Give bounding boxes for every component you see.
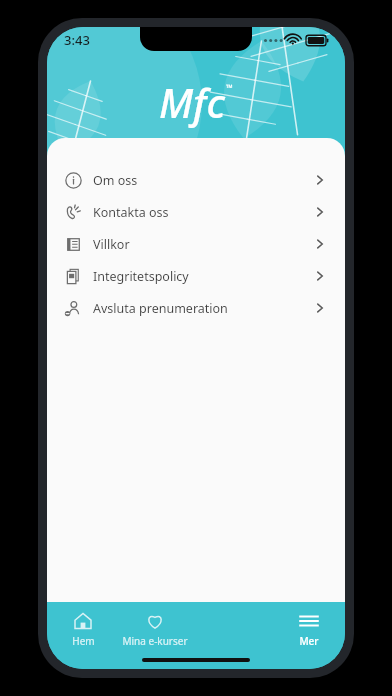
staticText: Om oss xyxy=(93,172,138,189)
staticText: Integritetspolicy xyxy=(93,268,189,285)
button[interactable]: Villkor xyxy=(47,228,345,260)
button[interactable]: Mina e-kurser xyxy=(111,608,199,651)
staticText: Hem xyxy=(72,634,95,648)
staticText: Avsluta prenumeration xyxy=(93,300,228,317)
staticText: 3:43 xyxy=(64,31,90,49)
button[interactable]: Mer xyxy=(283,608,335,651)
button[interactable]: Hem xyxy=(55,608,111,651)
staticText: Kontakta oss xyxy=(93,204,169,221)
staticText: Mer xyxy=(299,634,319,648)
staticText: Mfc xyxy=(159,75,225,129)
button[interactable]: Kontakta oss xyxy=(47,196,345,228)
staticText: Villkor xyxy=(93,236,130,253)
button[interactable]: Avsluta prenumeration xyxy=(47,292,345,324)
button[interactable]: Integritetspolicy xyxy=(47,260,345,292)
staticText: Mina e-kurser xyxy=(122,634,188,648)
staticText: ™ xyxy=(226,81,233,93)
button[interactable]: Om oss xyxy=(47,164,345,196)
